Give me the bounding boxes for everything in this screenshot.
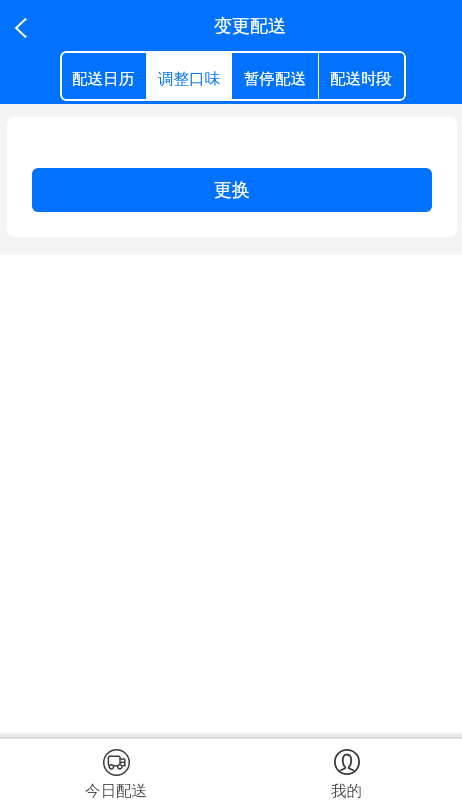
button[interactable]: 配送时段	[318, 51, 404, 101]
staticText: 调整口味	[158, 69, 220, 89]
staticText: 变更配送	[214, 15, 286, 38]
button[interactable]: 暂停配送	[232, 51, 318, 101]
button[interactable]: 我的	[231, 739, 462, 806]
staticText: 配送日历	[72, 69, 134, 89]
button[interactable]: Back	[0, 7, 42, 49]
button[interactable]: 更换	[32, 168, 432, 212]
staticText: 今日配送	[85, 781, 147, 801]
button[interactable]: 调整口味	[146, 51, 232, 101]
staticText: 更换	[214, 179, 250, 202]
button[interactable]: 今日配送	[0, 739, 231, 806]
button[interactable]: 配送日历	[60, 51, 146, 101]
staticText: 配送时段	[330, 69, 392, 89]
staticText: 暂停配送	[244, 69, 306, 89]
staticText: 我的	[331, 781, 362, 801]
